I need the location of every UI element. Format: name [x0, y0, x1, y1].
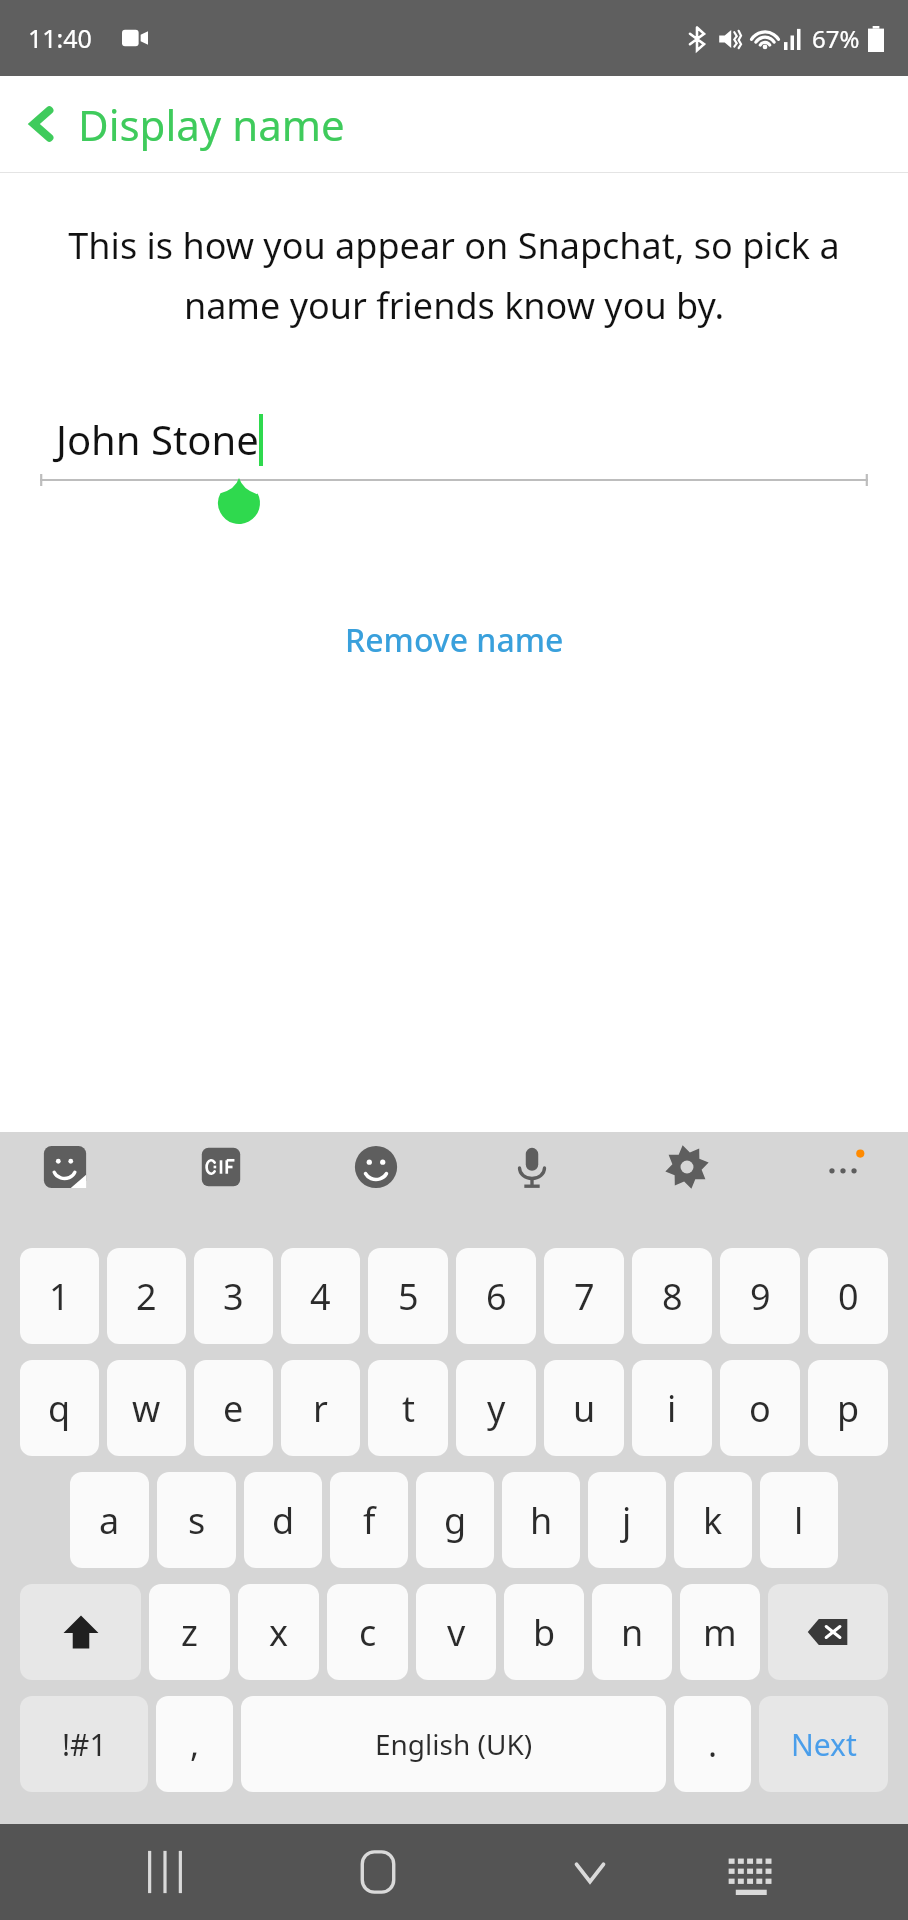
staticText: Next [791, 1724, 857, 1765]
button[interactable]: Home [330, 1824, 426, 1920]
staticText: n [621, 1608, 644, 1657]
button[interactable]: a [70, 1472, 149, 1568]
button[interactable]: Backspace [768, 1584, 888, 1680]
staticText: This is how you appear on Snapchat, so p… [56, 221, 852, 330]
staticText: o [749, 1384, 771, 1433]
button[interactable]: . [674, 1696, 751, 1792]
button[interactable]: o [720, 1360, 800, 1456]
other: Back [26, 105, 56, 143]
button[interactable]: s [157, 1472, 236, 1568]
staticText: f [363, 1496, 376, 1545]
staticText: John Stone [56, 412, 259, 466]
staticText: p [837, 1384, 860, 1433]
button[interactable]: v [416, 1584, 496, 1680]
button[interactable]: 6 [456, 1248, 536, 1344]
staticText: s [188, 1496, 206, 1545]
button[interactable]: w [107, 1360, 186, 1456]
staticText: i [667, 1384, 677, 1433]
staticText: q [48, 1384, 71, 1433]
staticText: 11:40 [28, 21, 92, 55]
staticText: 3 [223, 1272, 244, 1321]
staticText: y [487, 1384, 506, 1433]
button[interactable]: b [504, 1584, 584, 1680]
button[interactable]: j [588, 1472, 666, 1568]
button[interactable]: f [330, 1472, 408, 1568]
staticText: 67% [812, 22, 860, 55]
staticText: h [530, 1496, 553, 1545]
button[interactable]: Shift [20, 1584, 141, 1680]
button[interactable]: English (UK) [241, 1696, 666, 1792]
button[interactable]: Next [759, 1696, 888, 1792]
staticText: z [181, 1608, 198, 1657]
button[interactable]: Recents [117, 1824, 213, 1920]
staticText: 7 [574, 1272, 595, 1321]
staticText: x [269, 1608, 289, 1657]
button[interactable]: k [674, 1472, 752, 1568]
staticText: d [272, 1496, 295, 1545]
button[interactable]: Hide keyboard [542, 1824, 638, 1920]
button[interactable]: 2 [107, 1248, 186, 1344]
button[interactable]: q [20, 1360, 99, 1456]
button[interactable]: Emoji [341, 1132, 411, 1202]
staticText: , [190, 1721, 200, 1767]
button[interactable]: Voice input [497, 1132, 567, 1202]
staticText: Remove name [345, 618, 564, 662]
button[interactable]: z [149, 1584, 230, 1680]
staticText: a [99, 1496, 120, 1545]
button[interactable]: u [544, 1360, 624, 1456]
button[interactable]: 0 [808, 1248, 888, 1344]
staticText: Display name [78, 96, 345, 153]
button[interactable]: e [194, 1360, 273, 1456]
staticText: j [622, 1496, 632, 1545]
button[interactable]: Back [0, 76, 908, 172]
staticText: u [573, 1384, 596, 1433]
button[interactable]: Stickers [30, 1132, 100, 1202]
staticText: l [794, 1496, 804, 1545]
button[interactable]: m [680, 1584, 760, 1680]
button[interactable]: c [327, 1584, 408, 1680]
button[interactable]: h [502, 1472, 580, 1568]
staticText: w [132, 1384, 161, 1433]
button[interactable]: Keyboard settings [652, 1132, 722, 1202]
staticText: 9 [750, 1272, 771, 1321]
button[interactable]: 5 [368, 1248, 448, 1344]
staticText: g [444, 1496, 467, 1545]
button[interactable]: x [238, 1584, 319, 1680]
button[interactable]: n [592, 1584, 672, 1680]
button[interactable]: g [416, 1472, 494, 1568]
button[interactable]: 3 [194, 1248, 273, 1344]
button[interactable]: l [760, 1472, 838, 1568]
button[interactable]: 4 [281, 1248, 360, 1344]
staticText: k [703, 1496, 723, 1545]
staticText: t [402, 1384, 415, 1433]
staticText: b [533, 1608, 556, 1657]
staticText: English (UK) [375, 1725, 533, 1763]
button[interactable]: Remove name [325, 610, 584, 670]
staticText: m [703, 1608, 737, 1657]
button[interactable]: y [456, 1360, 536, 1456]
staticText: . [708, 1721, 718, 1767]
button[interactable]: t [368, 1360, 448, 1456]
button[interactable]: r [281, 1360, 360, 1456]
staticText: 8 [662, 1272, 683, 1321]
button[interactable]: d [244, 1472, 322, 1568]
button[interactable]: 9 [720, 1248, 800, 1344]
staticText: v [447, 1608, 466, 1657]
button[interactable]: p [808, 1360, 888, 1456]
button[interactable]: Change keyboard [696, 1824, 792, 1920]
button[interactable]: i [632, 1360, 712, 1456]
staticText: !#1 [62, 1724, 107, 1765]
staticText: 6 [486, 1272, 507, 1321]
staticText: 1 [49, 1272, 70, 1321]
button[interactable]: !#1 [20, 1696, 148, 1792]
button[interactable]: 7 [544, 1248, 624, 1344]
staticText: e [223, 1384, 244, 1433]
button[interactable]: More options [808, 1132, 878, 1202]
staticText: 5 [398, 1272, 419, 1321]
button[interactable]: 1 [20, 1248, 99, 1344]
button[interactable]: , [156, 1696, 233, 1792]
staticText: 0 [838, 1272, 859, 1321]
button[interactable]: 8 [632, 1248, 712, 1344]
staticText: c [359, 1608, 377, 1657]
button[interactable]: GIF [186, 1132, 256, 1202]
